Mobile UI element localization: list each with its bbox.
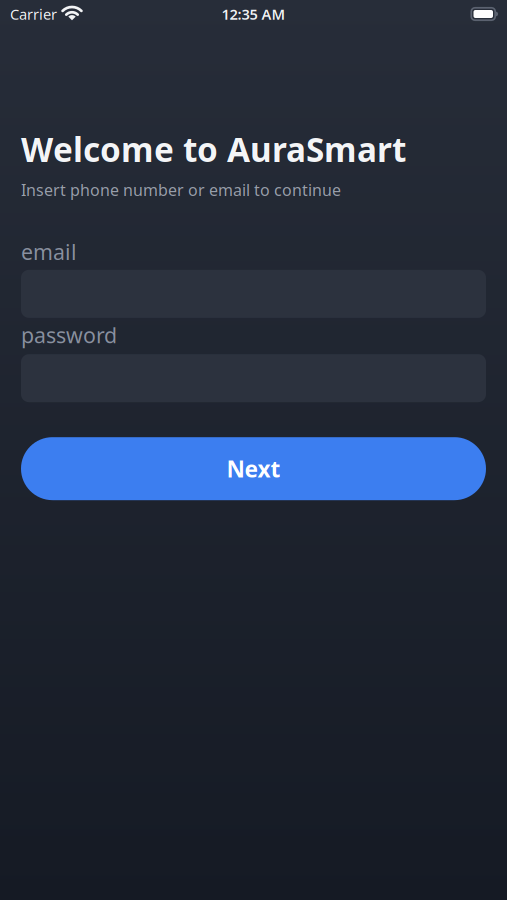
staticText: 12:35 AM [221,4,285,24]
staticText: Carrier [10,4,57,24]
button[interactable]: Next [21,437,486,500]
staticText: Welcome to AuraSmart [21,127,406,171]
staticText: email [21,237,77,266]
staticText: password [21,321,117,349]
staticText: Next [226,454,280,484]
staticText: Insert phone number or email to continue [21,179,341,200]
